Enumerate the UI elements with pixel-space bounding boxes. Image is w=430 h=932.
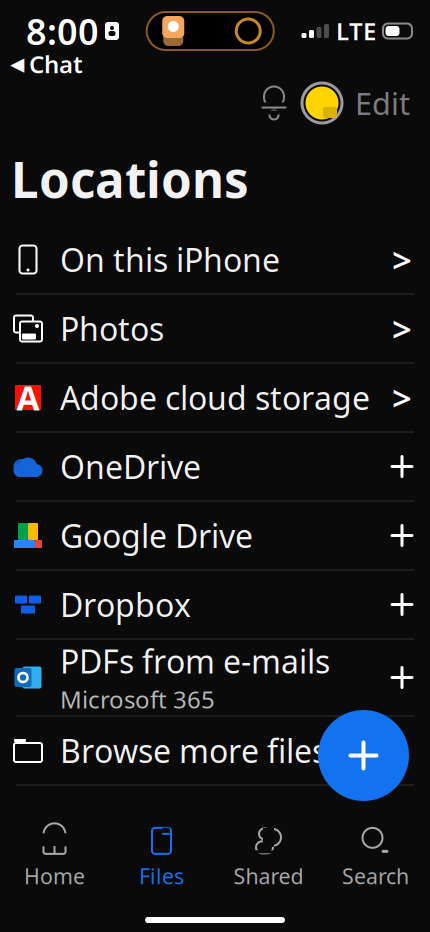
button[interactable]: Dropbox [0,570,430,638]
button[interactable]: ◀ [6,52,87,76]
staticText: OneDrive [60,445,201,488]
staticText: PDFs from e-mails [60,640,330,682]
staticText: ◀ [10,53,24,75]
staticText: > [392,374,412,420]
staticText: Files [139,862,184,890]
staticText: 8:00 [26,7,99,55]
button[interactable]: Edit [347,80,418,126]
staticText: Locations [11,146,249,211]
staticText: Photos [60,307,164,350]
staticText: LTE [336,15,376,47]
button[interactable]: Home [1,829,108,887]
staticText: Chat [29,48,83,80]
staticText: Search [342,862,409,890]
button[interactable]: Browse more files [0,716,430,784]
staticText: Adobe cloud storage [60,376,370,419]
button[interactable]: Search [322,829,429,887]
button[interactable]: Notifications [251,80,297,126]
button[interactable]: Create new file [318,710,409,801]
staticText: > [392,236,412,282]
staticText: Google Drive [60,514,253,557]
button[interactable]: Shared [215,829,322,887]
staticText: On this iPhone [60,238,280,281]
staticText: Home [24,862,85,890]
button[interactable]: OneDrive [0,432,430,500]
button[interactable]: Google Drive [0,501,430,569]
button[interactable]: PDFs from e-mails [0,639,430,715]
button[interactable]: Photos [0,294,430,362]
staticText: Microsoft 365 [60,683,215,715]
staticText: Edit [355,83,410,123]
button[interactable]: A [0,363,430,431]
staticText: Shared [233,862,303,890]
button[interactable]: Account [297,80,347,126]
button[interactable]: On this iPhone [0,225,430,293]
staticText: Browse more files [60,729,327,772]
staticText: Dropbox [60,583,191,626]
button[interactable]: Files [108,829,215,887]
staticText: A [16,375,39,420]
staticText: > [392,305,412,351]
